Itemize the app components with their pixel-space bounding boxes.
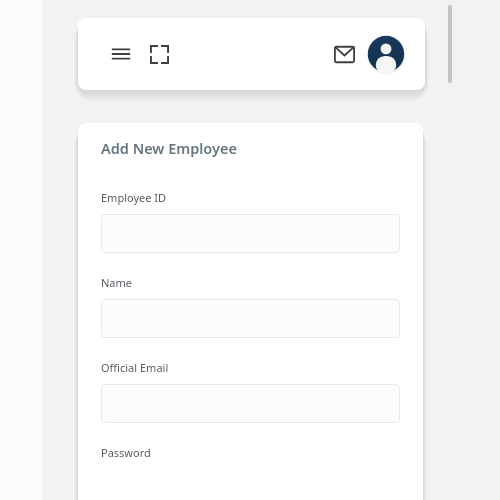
- staticText: Add New Employee: [101, 138, 237, 158]
- staticText: Name: [101, 275, 133, 290]
- button[interactable]: Menu: [106, 39, 136, 69]
- staticText: Employee ID: [101, 190, 167, 205]
- staticText: Official Email: [101, 360, 169, 375]
- button[interactable]: Messages: [327, 37, 361, 71]
- button[interactable]: Fullscreen: [144, 39, 174, 69]
- button[interactable]: [101, 214, 400, 253]
- button[interactable]: Profile: [367, 35, 405, 73]
- button[interactable]: [101, 384, 400, 423]
- staticText: Password: [101, 445, 151, 460]
- button[interactable]: [101, 299, 400, 338]
